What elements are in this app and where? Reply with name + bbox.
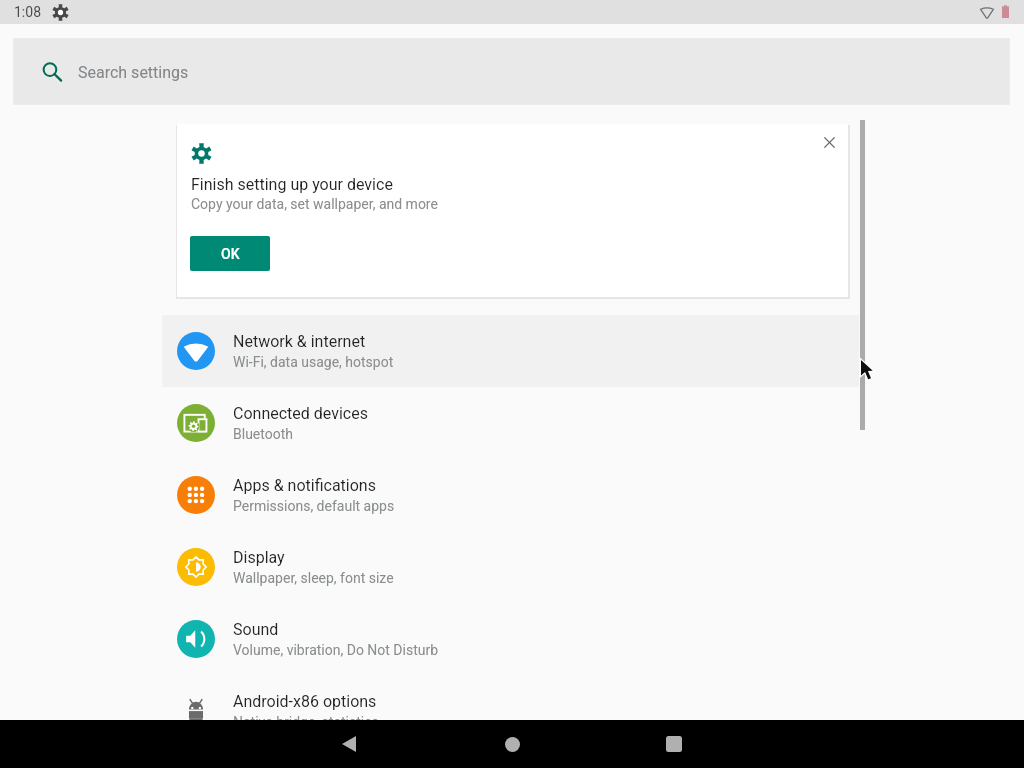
- staticText: Android-x86 options: [233, 692, 377, 711]
- staticText: Search settings: [78, 63, 189, 82]
- button[interactable]: Network & internet: [162, 315, 859, 387]
- staticText: Copy your data, set wallpaper, and more: [191, 196, 438, 212]
- staticText: Connected devices: [233, 404, 368, 423]
- staticText: Volume, vibration, Do Not Disturb: [233, 642, 439, 658]
- staticText: Finish setting up your device: [191, 175, 393, 194]
- staticText: Network & internet: [233, 332, 366, 351]
- staticText: 1:08: [14, 4, 41, 20]
- staticText: Bluetooth: [233, 426, 293, 442]
- button[interactable]: Home: [488, 720, 536, 768]
- button[interactable]: OK: [190, 236, 270, 271]
- staticText: Display: [233, 548, 285, 567]
- staticText: OK: [221, 246, 240, 262]
- button[interactable]: Apps & notifications: [162, 459, 859, 531]
- button[interactable]: Search settings: [14, 39, 1009, 104]
- button[interactable]: Sound: [162, 603, 859, 675]
- staticText: Sound: [233, 620, 279, 639]
- button[interactable]: Back: [325, 720, 373, 768]
- button[interactable]: Recents: [650, 720, 698, 768]
- staticText: Wi-Fi, data usage, hotspot: [233, 354, 394, 370]
- button[interactable]: Android-x86 options: [162, 675, 859, 747]
- staticText: Permissions, default apps: [233, 498, 395, 514]
- staticText: Apps & notifications: [233, 476, 376, 495]
- staticText: Wallpaper, sleep, font size: [233, 570, 394, 586]
- button[interactable]: Dismiss: [815, 128, 843, 156]
- button[interactable]: Connected devices: [162, 387, 859, 459]
- button[interactable]: Display: [162, 531, 859, 603]
- staticText: Native bridge, statistics: [233, 714, 379, 730]
